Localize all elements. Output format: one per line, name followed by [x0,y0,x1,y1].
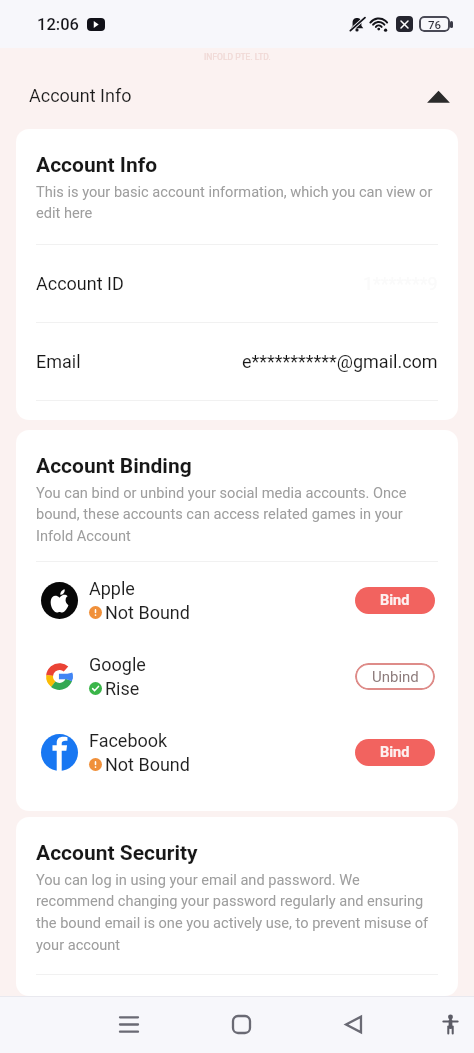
staticText: Rise [105,678,140,699]
staticText: 76 [428,18,442,31]
staticText: Account Binding [36,454,192,479]
staticText: Bind [380,592,410,609]
button[interactable]: Account ID [36,245,438,322]
button[interactable]: Account Info [0,65,474,123]
staticText: Unbind [372,668,419,686]
button[interactable]: Home [213,996,270,1053]
button[interactable]: Email [36,323,438,400]
staticText: This is your basic account information, … [36,183,438,222]
button[interactable]: Unbind [355,663,435,690]
button[interactable]: Accessibility [426,996,474,1053]
button[interactable]: Recent apps [100,996,157,1053]
staticText: Account Info [29,85,132,106]
other: Collapse [427,85,449,107]
staticText: Facebook [89,730,168,751]
button[interactable]: Bind [355,587,435,614]
staticText: Not Bound [105,754,190,775]
staticText: Bind [380,744,410,761]
staticText: You can bind or unbind your social media… [36,484,438,545]
staticText: Google [89,654,146,675]
staticText: Account Security [36,841,198,866]
staticText: INFOLD PTE. LTD. [204,52,271,62]
staticText: You can log in using your email and pass… [36,871,438,954]
staticText: Account Info [36,153,158,178]
staticText: Email [36,351,81,372]
staticText: e***********@gmail.com [242,351,438,372]
staticText: Account ID [36,273,124,294]
button[interactable]: Back [325,996,382,1053]
button[interactable]: Bind [355,739,435,766]
staticText: Apple [89,578,135,599]
staticText: Not Bound [105,602,190,623]
staticText: 12:06 [37,15,79,34]
